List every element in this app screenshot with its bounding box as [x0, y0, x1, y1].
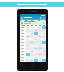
button[interactable]	[20, 53, 46, 56]
button[interactable]	[42, 50, 46, 53]
button[interactable]	[30, 50, 34, 53]
button[interactable]	[26, 26, 30, 29]
button[interactable]	[26, 35, 30, 38]
button[interactable]	[20, 26, 46, 29]
button[interactable]	[26, 44, 30, 47]
button[interactable]	[20, 47, 46, 50]
button[interactable]	[20, 56, 46, 59]
button[interactable]	[38, 26, 42, 29]
button[interactable]	[20, 44, 46, 47]
button[interactable]	[38, 44, 42, 47]
button[interactable]: Banner	[0, 2, 64, 7]
button[interactable]	[20, 29, 46, 32]
button[interactable]	[20, 32, 46, 35]
button[interactable]	[20, 38, 46, 41]
button[interactable]: Notice	[20, 21, 46, 24]
button[interactable]	[20, 41, 46, 44]
button[interactable]	[38, 35, 42, 38]
button[interactable]	[38, 53, 42, 56]
button[interactable]: More options	[43, 17, 45, 19]
button[interactable]	[20, 50, 46, 53]
button[interactable]	[34, 47, 38, 50]
button[interactable]	[42, 32, 46, 35]
button[interactable]	[34, 38, 38, 41]
button[interactable]: App bar	[20, 16, 46, 19]
button[interactable]	[30, 59, 34, 62]
button[interactable]	[20, 59, 46, 62]
button[interactable]	[34, 56, 38, 59]
button[interactable]: Search	[40, 17, 42, 19]
button[interactable]	[20, 35, 46, 38]
button[interactable]	[30, 32, 34, 35]
button[interactable]	[34, 29, 38, 32]
